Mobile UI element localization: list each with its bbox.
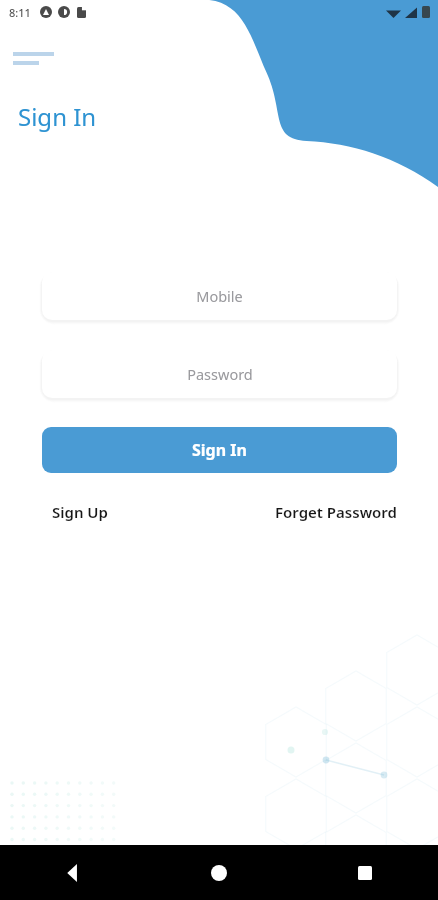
button[interactable]: Sign In <box>42 427 397 473</box>
button[interactable]: Password <box>42 350 397 398</box>
staticText: Sign Up <box>52 502 108 522</box>
button[interactable]: Menu <box>6 40 54 72</box>
button[interactable]: Mobile <box>42 272 397 320</box>
staticText: Password <box>187 364 253 384</box>
button[interactable]: Forget Password <box>275 502 397 522</box>
staticText: Mobile <box>196 286 243 306</box>
staticText: Sign In <box>18 100 97 133</box>
staticText: Forget Password <box>275 502 397 522</box>
button[interactable]: Back <box>0 845 146 900</box>
staticText: 8:11 <box>9 5 31 20</box>
button[interactable]: Home <box>146 845 292 900</box>
staticText: Sign In <box>192 439 247 461</box>
button[interactable]: Sign Up <box>52 502 108 522</box>
button[interactable]: Recent apps <box>292 845 438 900</box>
